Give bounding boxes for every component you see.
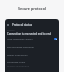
staticText: Session resumption	[7, 64, 30, 67]
staticText: Key exchange algorithm	[7, 45, 35, 48]
staticText: Auto-negotiate ciphers	[7, 37, 33, 40]
staticText: Connection is encrypted end to end	[7, 32, 52, 35]
staticText: Cipher suite policy	[7, 53, 28, 56]
button[interactable]: Auto-negotiate ciphers	[5, 37, 59, 40]
button[interactable]: Connection is encrypted end to end	[5, 32, 59, 35]
button[interactable]: System	[5, 29, 59, 32]
staticText: Protocol status	[12, 23, 33, 27]
button[interactable]: Back	[5, 23, 59, 27]
staticText: Certificate chain	[7, 60, 26, 63]
staticText: System	[7, 29, 15, 32]
staticText: Secure protocol	[0, 6, 64, 11]
button[interactable]: Cipher suite policy	[5, 53, 59, 56]
button[interactable]: Session resumption	[5, 64, 59, 67]
button[interactable]: Certificate chain	[5, 60, 59, 63]
button[interactable]: Key exchange algorithm	[5, 45, 59, 48]
